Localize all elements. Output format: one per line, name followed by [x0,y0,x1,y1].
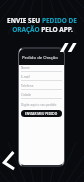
other: Decorative arrows [0,0,84,182]
staticText: ORAÇÃO PELO APP. [12,25,73,34]
staticText: Nome [21,66,30,70]
staticText: ENVIE SEU PEDIDO DE [7,16,77,25]
button[interactable]: ENVIAR MEU PEDIDO [21,110,62,117]
staticText: ENVIAR MEU PEDIDO [25,112,58,116]
button[interactable]: Pedido de Oração [19,49,64,65]
staticText: E-mail [21,75,30,79]
staticText: Pedido de Oração [22,54,58,60]
staticText: Cidade [21,93,32,97]
staticText: Telefone [21,84,34,88]
staticText: Digite aqui o seu pedido [21,103,57,107]
